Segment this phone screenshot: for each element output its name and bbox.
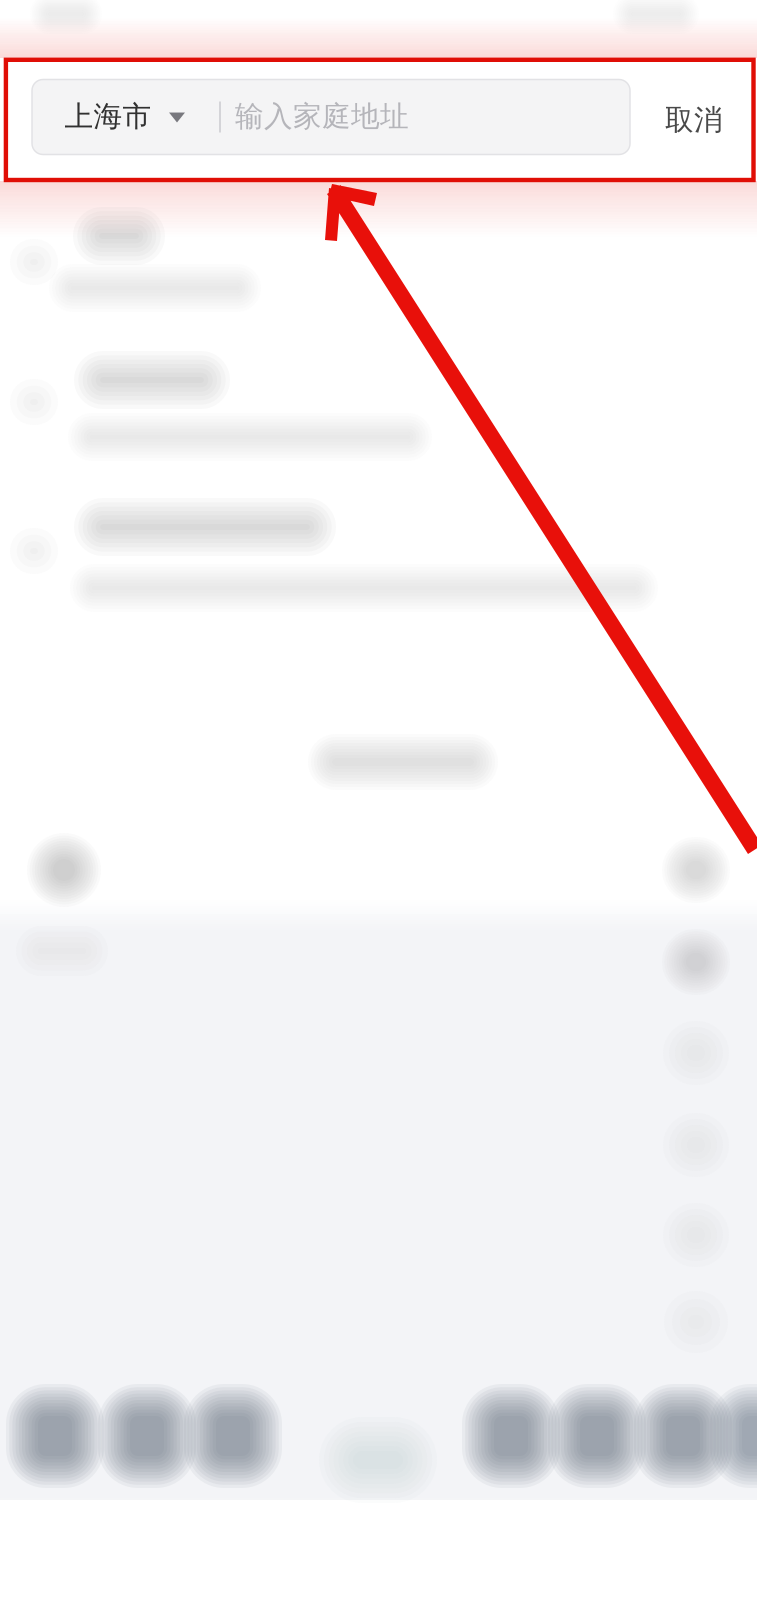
button[interactable]: 上海市	[32, 79, 630, 154]
staticText: 输入家庭地址	[235, 98, 409, 134]
button[interactable]: 取消	[642, 80, 746, 160]
staticText: 取消	[665, 102, 723, 138]
staticText: 上海市	[64, 98, 151, 134]
